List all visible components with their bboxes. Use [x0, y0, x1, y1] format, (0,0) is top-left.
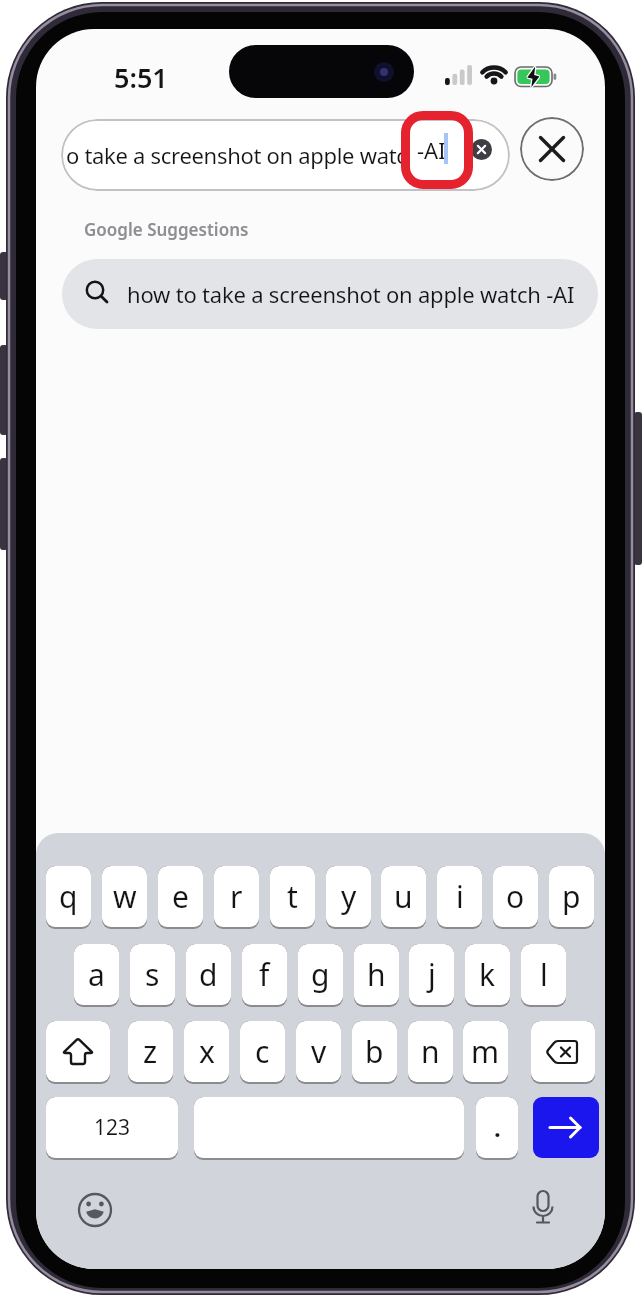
button[interactable]: y: [326, 866, 371, 929]
button[interactable]: f: [242, 944, 287, 1007]
staticText: q: [59, 876, 78, 917]
button[interactable]: d: [186, 944, 231, 1007]
button[interactable]: w: [102, 866, 147, 929]
button[interactable]: n: [408, 1021, 453, 1084]
staticText: 123: [94, 1113, 131, 1142]
button[interactable]: .: [476, 1097, 518, 1160]
button[interactable]: z: [128, 1021, 173, 1084]
button[interactable]: e: [158, 866, 203, 929]
staticText: f: [259, 954, 270, 995]
button[interactable]: c: [240, 1021, 285, 1084]
button[interactable]: o take a screenshot on apple watc: [61, 119, 510, 191]
button[interactable]: u: [381, 866, 426, 929]
staticText: s: [145, 954, 160, 995]
button[interactable]: h: [354, 944, 399, 1007]
staticText: .: [494, 1111, 501, 1144]
staticText: u: [394, 876, 413, 917]
staticText: z: [143, 1031, 158, 1072]
button[interactable]: s: [130, 944, 175, 1007]
staticText: Google Suggestions: [84, 218, 249, 241]
button[interactable]: r: [214, 866, 259, 929]
button[interactable]: [75, 1190, 115, 1230]
button[interactable]: p: [549, 866, 594, 929]
staticText: a: [88, 954, 105, 995]
button[interactable]: g: [298, 944, 343, 1007]
button[interactable]: 123: [46, 1097, 178, 1160]
button[interactable]: [523, 1188, 563, 1228]
staticText: j: [428, 954, 436, 995]
button[interactable]: i: [437, 866, 482, 929]
button[interactable]: t: [270, 866, 315, 929]
staticText: i: [456, 876, 464, 917]
staticText: w: [113, 876, 137, 917]
staticText: v: [311, 1031, 327, 1072]
button[interactable]: q: [46, 866, 91, 929]
button[interactable]: m: [463, 1021, 508, 1084]
button[interactable]: j: [409, 944, 454, 1007]
button[interactable]: [471, 139, 492, 160]
button[interactable]: [194, 1097, 464, 1160]
staticText: x: [199, 1031, 215, 1072]
button[interactable]: l: [521, 944, 566, 1007]
staticText: t: [287, 876, 298, 917]
button[interactable]: how to take a screenshot on apple watch …: [62, 259, 598, 329]
staticText: o take a screenshot on apple watc: [66, 140, 407, 170]
staticText: k: [479, 954, 496, 995]
staticText: e: [172, 876, 189, 917]
staticText: r: [230, 876, 243, 917]
button[interactable]: [533, 1097, 599, 1158]
staticText: l: [540, 954, 548, 995]
staticText: o: [506, 876, 525, 917]
button[interactable]: x: [184, 1021, 229, 1084]
button[interactable]: o: [493, 866, 538, 929]
staticText: d: [199, 954, 218, 995]
staticText: 5:51: [114, 59, 168, 93]
button[interactable]: b: [352, 1021, 397, 1084]
button[interactable]: a: [74, 944, 119, 1007]
staticText: m: [471, 1031, 500, 1072]
staticText: c: [255, 1031, 270, 1072]
staticText: p: [562, 876, 581, 917]
button[interactable]: [531, 1021, 595, 1084]
staticText: -AI: [417, 135, 446, 165]
staticText: n: [421, 1031, 440, 1072]
staticText: y: [341, 876, 357, 917]
button[interactable]: [46, 1021, 110, 1084]
staticText: g: [311, 954, 330, 995]
button[interactable]: k: [465, 944, 510, 1007]
staticText: b: [365, 1031, 384, 1072]
button[interactable]: v: [296, 1021, 341, 1084]
staticText: how to take a screenshot on apple watch …: [127, 279, 575, 309]
staticText: h: [367, 954, 386, 995]
button[interactable]: [520, 117, 584, 181]
